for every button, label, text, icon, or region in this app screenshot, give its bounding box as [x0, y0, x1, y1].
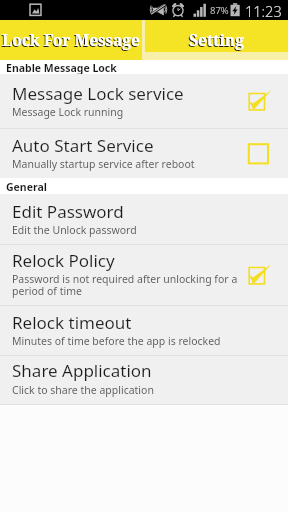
button[interactable]: Edit Password	[0, 194, 288, 244]
staticText: Message Lock service	[12, 82, 184, 105]
button[interactable]: Relock timeout	[0, 306, 288, 355]
staticText: Relock Policy	[12, 249, 115, 272]
staticText: Minutes of time before the app is relock…	[12, 334, 242, 348]
staticText: Auto Start Service	[12, 134, 154, 157]
button[interactable]: Enabled, checked	[243, 86, 275, 116]
button[interactable]: Relock Policy	[0, 245, 288, 305]
staticText: Enable Message Lock	[6, 61, 117, 75]
staticText: 11:23	[245, 1, 282, 21]
staticText: Password is not required after unlocking…	[12, 272, 244, 298]
staticText: Edit the Unlock password	[12, 223, 242, 237]
button[interactable]: Share Application	[0, 356, 288, 404]
button[interactable]: Setting	[145, 20, 288, 60]
staticText: 87%	[210, 4, 229, 17]
staticText: Relock timeout	[12, 311, 132, 334]
staticText: Edit Password	[12, 200, 124, 223]
staticText: Click to share the application	[12, 383, 242, 397]
staticText: Setting	[189, 29, 244, 50]
staticText: General	[6, 180, 47, 194]
button[interactable]: Auto Start Service	[0, 129, 288, 178]
button[interactable]: Enabled, checked	[243, 260, 275, 290]
staticText: Manually startup service after reboot	[12, 157, 242, 171]
staticText: Lock For Message	[1, 30, 139, 51]
staticText: Share Application	[12, 359, 152, 382]
staticText: Setting	[188, 30, 243, 51]
button[interactable]: Disabled, unchecked	[243, 138, 275, 168]
button[interactable]: Lock For Message	[0, 20, 142, 60]
staticText: Message Lock running	[12, 105, 242, 119]
button[interactable]: Message Lock service	[0, 74, 288, 128]
staticText: Lock For Message	[2, 29, 140, 50]
